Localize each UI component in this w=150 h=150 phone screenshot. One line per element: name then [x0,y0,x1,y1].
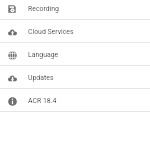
button[interactable]: Updates [0,66,150,89]
button[interactable]: Recording [0,0,150,20]
staticText: Language [28,51,59,59]
staticText: Recording [28,5,59,13]
staticText: ACR 18.4 [28,97,57,105]
staticText: Updates [28,74,54,82]
button[interactable]: Cloud Services [0,20,150,43]
staticText: Cloud Services [28,28,74,36]
button[interactable]: Language [0,43,150,66]
button[interactable]: ACR 18.4 [0,89,150,112]
